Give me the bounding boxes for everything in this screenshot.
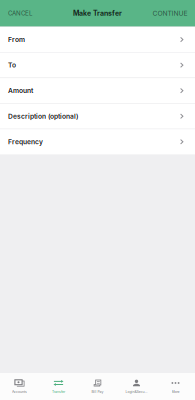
staticText: Bill Pay: [91, 390, 103, 394]
button[interactable]: Transfer: [39, 373, 78, 400]
staticText: Accounts: [12, 390, 27, 394]
button[interactable]: Login&Secu...: [117, 373, 156, 400]
staticText: Login&Secu...: [125, 390, 147, 394]
button[interactable]: To: [0, 52, 195, 78]
button[interactable]: CONTINUE: [151, 1, 195, 26]
staticText: Amount: [8, 87, 33, 95]
staticText: More: [171, 390, 179, 394]
button[interactable]: Amount: [0, 78, 195, 103]
button[interactable]: CANCEL: [0, 1, 33, 26]
staticText: Make Transfer: [73, 9, 122, 17]
button[interactable]: Description (optional): [0, 104, 195, 129]
button[interactable]: Accounts: [0, 373, 39, 400]
staticText: CANCEL: [8, 10, 32, 17]
button[interactable]: From: [0, 27, 195, 52]
staticText: Frequency: [8, 138, 43, 146]
staticText: From: [8, 35, 25, 44]
staticText: CONTINUE: [152, 9, 187, 17]
button[interactable]: Frequency: [0, 129, 195, 154]
staticText: Description (optional): [8, 112, 78, 120]
button[interactable]: Bill Pay: [78, 373, 117, 400]
staticText: Transfer: [52, 390, 65, 394]
button[interactable]: More: [156, 373, 195, 400]
staticText: To: [8, 61, 16, 69]
